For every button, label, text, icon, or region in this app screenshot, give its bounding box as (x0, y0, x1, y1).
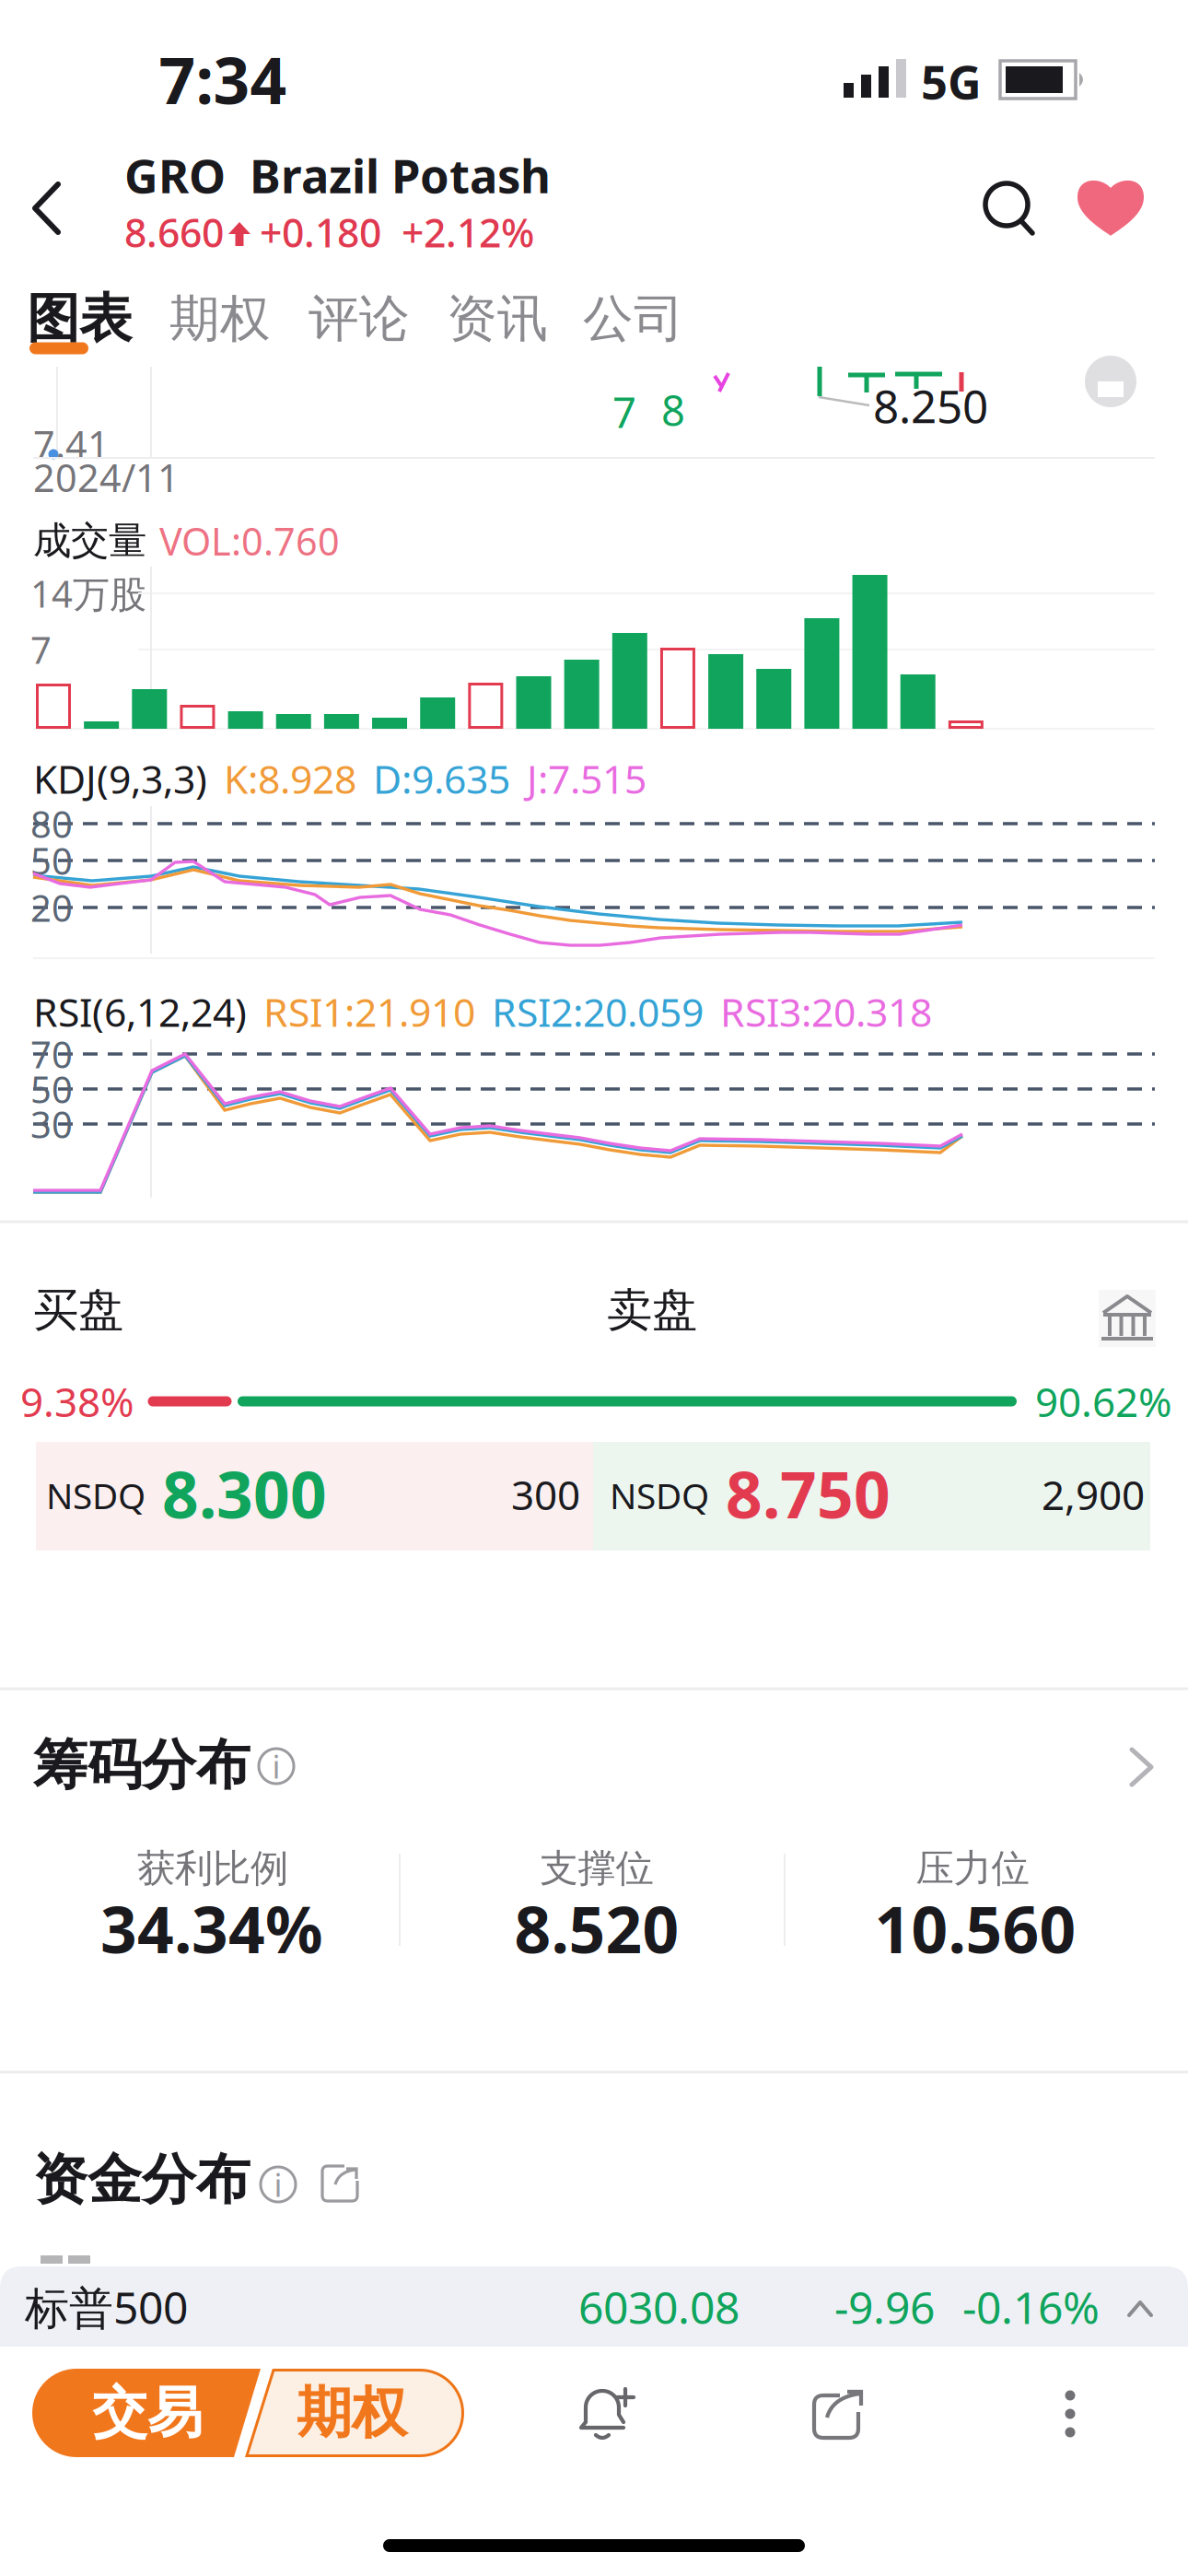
staticText: 期权 (169, 288, 271, 350)
staticText: 80 (30, 799, 73, 848)
button[interactable]: 图表 (27, 286, 132, 351)
button[interactable]: Favorite (1077, 180, 1144, 239)
staticText: 期权 (297, 2379, 407, 2447)
button[interactable]: 交易 (32, 2369, 261, 2457)
staticText: J:7.515 (527, 752, 646, 805)
staticText: 买盘 (33, 1282, 123, 1338)
staticText: 2024/11 (33, 452, 180, 503)
button[interactable]: Index ticker (0, 2266, 1188, 2347)
staticText: NSDQ (610, 1472, 709, 1519)
staticText: 资讯 (447, 288, 548, 350)
staticText: RSI(6,12,24) (33, 986, 247, 1038)
staticText: -0.16% (962, 2278, 1100, 2336)
staticText: 卖盘 (607, 1282, 697, 1338)
staticText: 8 (661, 382, 685, 438)
staticText: 支撑位 (540, 1845, 653, 1892)
staticText: i (274, 2163, 282, 2206)
staticText: KDJ(9,3,3) (33, 752, 207, 805)
staticText: 30 (30, 1099, 73, 1148)
staticText: K:8.928 (224, 752, 356, 805)
staticText: D:9.635 (373, 752, 510, 805)
staticText: GRO Brazil Potash (124, 144, 551, 206)
button[interactable]: Info (259, 1749, 294, 1784)
button[interactable]: Price alert (574, 2387, 635, 2442)
staticText: 8.520 (514, 1886, 679, 1971)
button[interactable]: Search (979, 179, 1038, 238)
staticText: 公司 (583, 288, 684, 350)
staticText: i (272, 1745, 280, 1787)
staticText: 34.34% (100, 1886, 323, 1971)
staticText: RSI3:20.318 (720, 986, 932, 1038)
staticText: 成交量 (33, 517, 146, 564)
staticText: 筹码分布 (33, 1732, 250, 1799)
staticText: RSI2:20.059 (492, 986, 704, 1038)
button[interactable]: More actions (1064, 2390, 1077, 2438)
staticText: -9.96 (834, 2278, 935, 2336)
staticText: +0.180 (250, 206, 381, 258)
button[interactable]: Share (320, 2164, 359, 2203)
staticText: 7.41 (33, 419, 110, 469)
staticText: RSI1:21.910 (263, 986, 475, 1038)
staticText: 90.62% (1035, 1374, 1172, 1428)
staticText: NSDQ (46, 1472, 146, 1519)
staticText: 50 (30, 836, 73, 885)
button[interactable]: Info (261, 2167, 296, 2202)
staticText: 20 (30, 883, 73, 932)
staticText: +2.12% (381, 206, 534, 258)
staticText: 50 (30, 1064, 73, 1113)
staticText: 5G (921, 50, 982, 112)
staticText: 9.38% (20, 1374, 134, 1428)
staticText: 7:34 (159, 37, 287, 122)
button[interactable]: 期权 (169, 288, 271, 350)
button[interactable]: 公司 (583, 288, 684, 350)
staticText: 交易 (92, 2379, 203, 2447)
staticText: 2,900 (1042, 1467, 1145, 1521)
staticText: 标普500 (25, 2278, 188, 2336)
staticText: 70 (30, 1029, 73, 1078)
staticText: 8.750 (726, 1451, 891, 1536)
staticText: 10.560 (874, 1886, 1076, 1971)
button[interactable]: 期权 (241, 2369, 464, 2457)
button[interactable]: More (1128, 1748, 1156, 1786)
staticText: 14万股 (30, 569, 146, 618)
staticText: 7 (30, 625, 52, 674)
staticText: 压力位 (916, 1845, 1029, 1892)
staticText: 资金分布 (33, 2147, 250, 2213)
staticText: 评论 (309, 288, 410, 350)
button[interactable]: Share (812, 2392, 862, 2440)
staticText: 图表 (27, 286, 132, 351)
button[interactable]: Broker queue (1099, 1290, 1156, 1347)
staticText: VOL:0.760 (159, 516, 340, 566)
button[interactable]: 资讯 (447, 288, 548, 350)
button[interactable]: Back (30, 171, 80, 245)
staticText: 8.250 (873, 375, 988, 436)
staticText: 6030.08 (578, 2278, 740, 2336)
staticText: 300 (511, 1467, 580, 1521)
staticText: 获利比例 (137, 1845, 288, 1892)
staticText: 8.660 (124, 206, 224, 258)
staticText: 7 (612, 384, 636, 440)
button[interactable]: 评论 (309, 288, 410, 350)
staticText: 8.300 (162, 1451, 327, 1536)
